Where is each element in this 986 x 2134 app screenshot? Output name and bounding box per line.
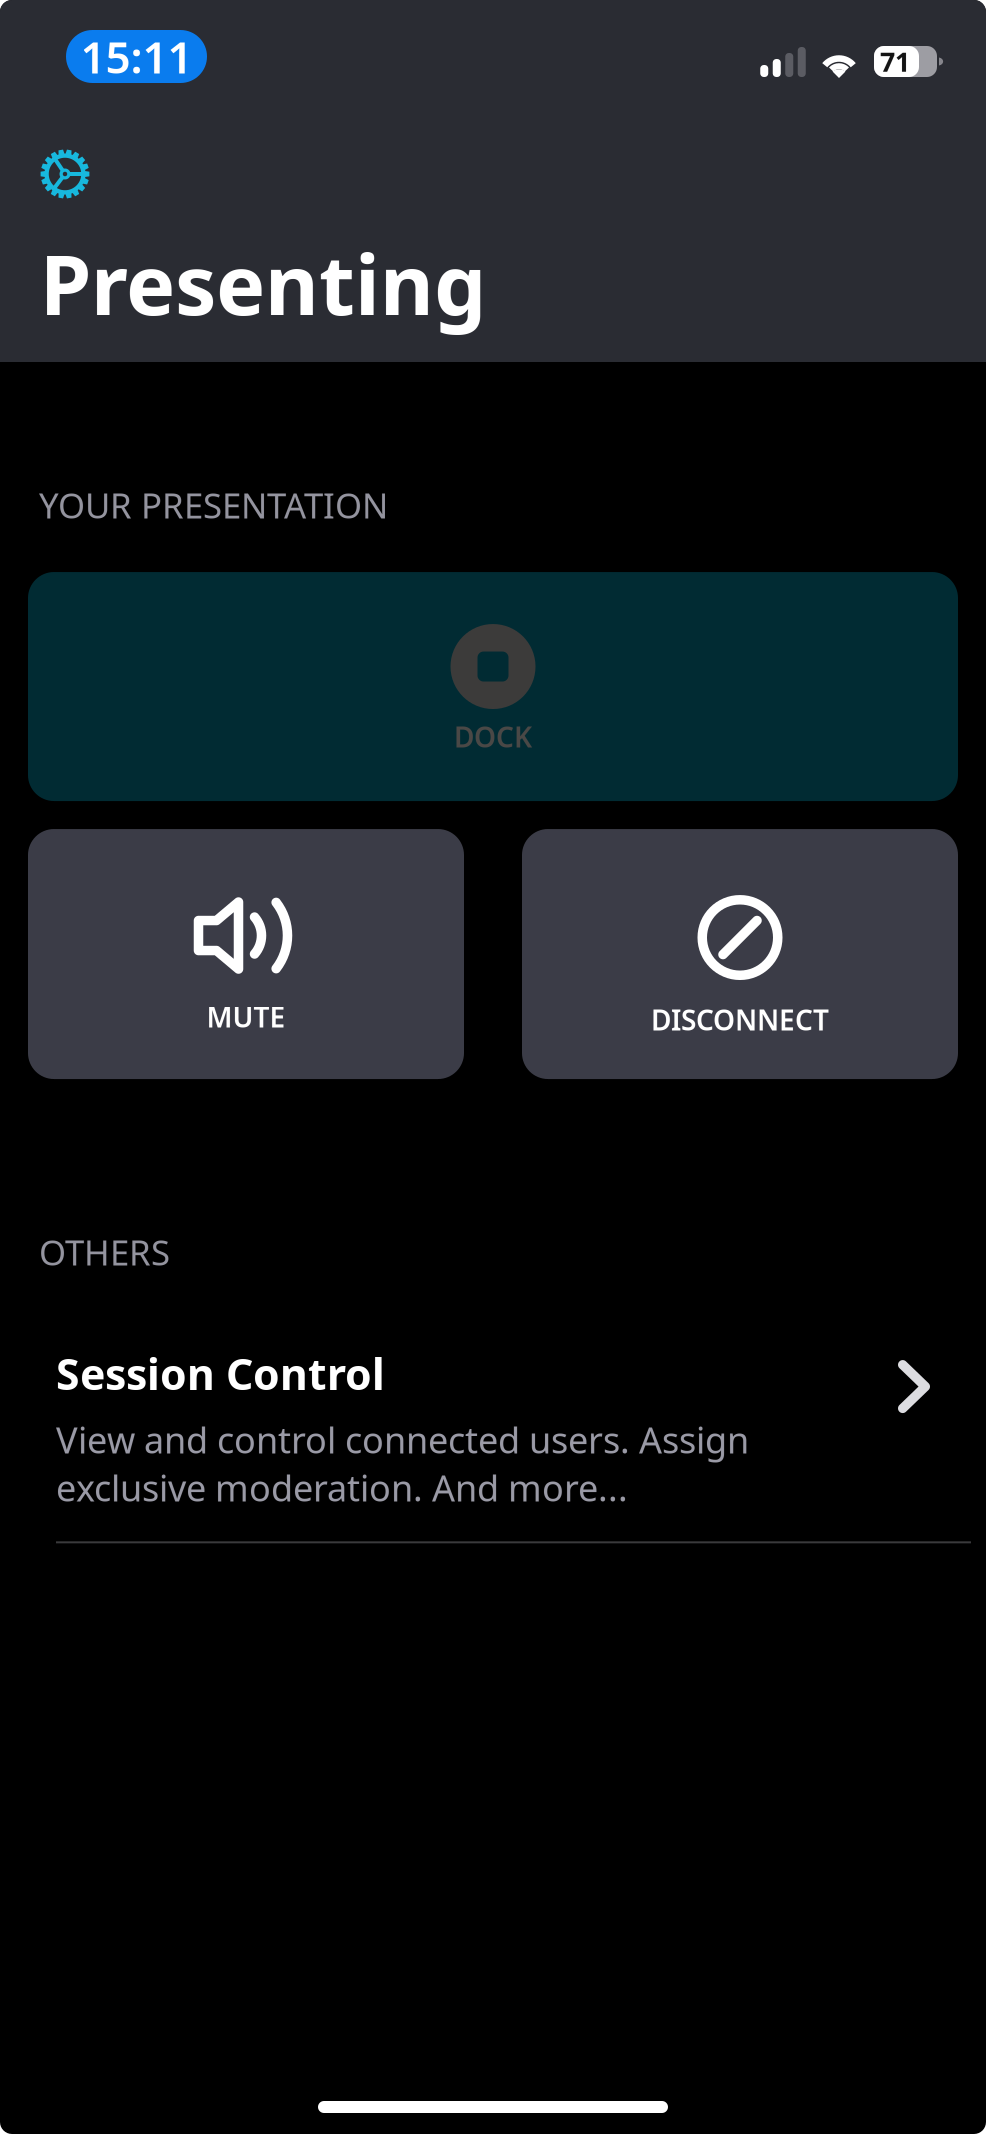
staticText: 15:11: [80, 27, 192, 86]
staticText: DOCK: [454, 718, 532, 755]
staticText: YOUR PRESENTATION: [39, 482, 388, 528]
staticText: View and control connected users. Assign…: [56, 1416, 749, 1511]
staticText: Session Control: [56, 1345, 385, 1402]
staticText: DISCONNECT: [651, 1001, 829, 1038]
button[interactable]: Settings: [0, 149, 90, 199]
staticText: 71: [880, 44, 910, 79]
button[interactable]: DISCONNECT: [522, 829, 958, 1079]
staticText: Presenting: [40, 228, 486, 338]
button[interactable]: DOCK: [28, 572, 958, 801]
button[interactable]: MUTE: [28, 829, 464, 1079]
staticText: MUTE: [206, 998, 285, 1035]
button[interactable]: Session Control: [0, 1345, 986, 1543]
staticText: OTHERS: [39, 1229, 170, 1275]
